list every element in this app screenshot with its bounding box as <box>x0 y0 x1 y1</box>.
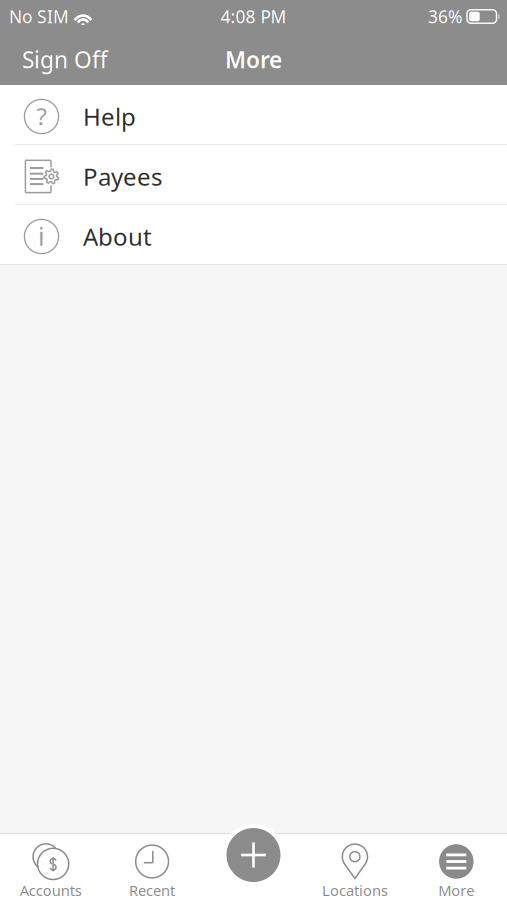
staticText: About <box>83 221 152 252</box>
button[interactable]: Sign Off <box>16 38 114 80</box>
staticText: Sign Off <box>22 44 108 74</box>
staticText: Payees <box>83 161 162 192</box>
button[interactable]: Locations <box>304 833 406 900</box>
staticText: i <box>38 219 45 253</box>
button[interactable]: More <box>406 833 507 900</box>
staticText: 4:08 PM <box>220 5 286 28</box>
button[interactable]: Accounts <box>0 833 101 900</box>
staticText: More <box>225 44 282 74</box>
staticText: More <box>438 880 474 900</box>
button[interactable]: i <box>0 205 507 264</box>
staticText: ? <box>36 100 46 132</box>
button[interactable]: Recent <box>101 833 203 900</box>
staticText: Accounts <box>20 880 82 900</box>
staticText: Locations <box>322 880 388 900</box>
staticText: No SIM <box>9 5 69 28</box>
staticText: 36% <box>428 5 462 28</box>
button[interactable]: Payees <box>0 145 507 204</box>
button[interactable]: ? <box>0 85 507 144</box>
button[interactable]: Add <box>222 824 284 886</box>
staticText: Help <box>83 101 136 132</box>
staticText: Recent <box>129 880 175 900</box>
